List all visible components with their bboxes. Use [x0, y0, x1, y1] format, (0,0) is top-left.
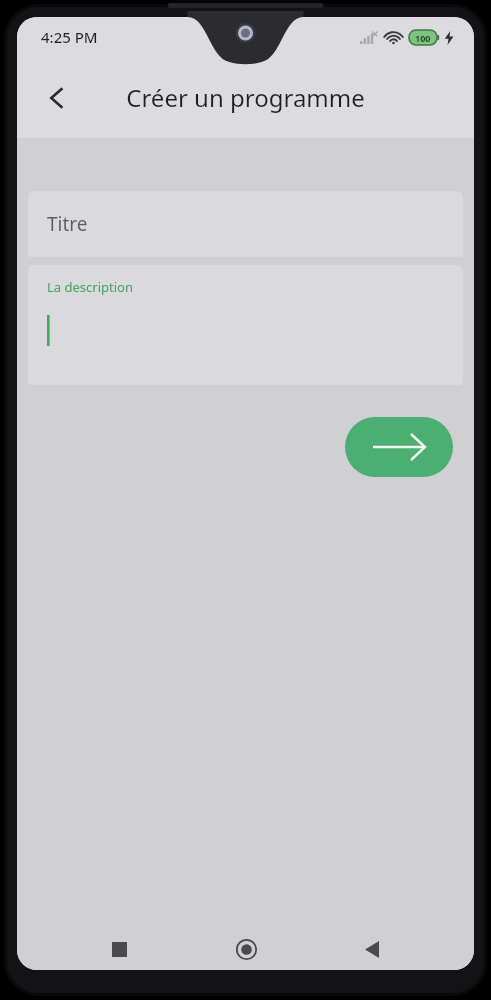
button[interactable]: Home	[222, 928, 270, 970]
staticText: Titre	[47, 211, 88, 237]
button[interactable]: Recent apps	[95, 928, 143, 970]
button[interactable]: Next	[345, 417, 453, 477]
button[interactable]: Back	[348, 928, 396, 970]
button[interactable]: Back	[31, 72, 83, 124]
staticText: 100	[415, 32, 431, 44]
staticText: 4:25 PM	[41, 27, 98, 47]
button[interactable]: Titre	[28, 191, 463, 257]
staticText: Créer un programme	[126, 81, 365, 114]
button[interactable]: La description	[28, 265, 463, 385]
staticText: La description	[47, 278, 133, 296]
